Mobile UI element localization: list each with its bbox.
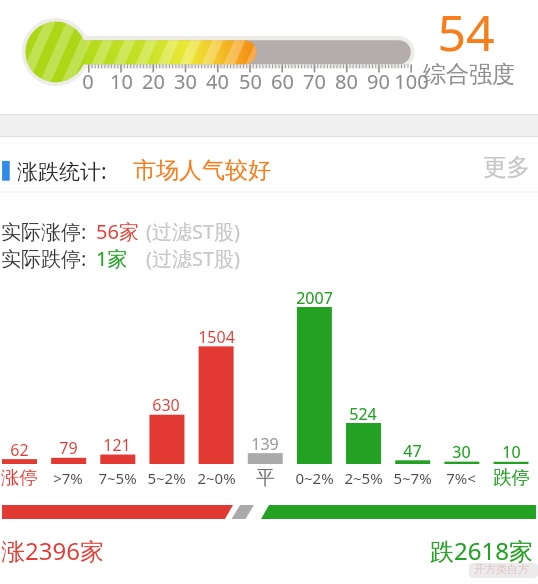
staticText: 2~5% xyxy=(344,468,383,488)
staticText: 10 xyxy=(502,441,521,463)
staticText: 平 xyxy=(256,466,275,489)
staticText: 20 xyxy=(142,68,165,95)
staticText: 630 xyxy=(152,394,180,416)
staticText: (过滤ST股) xyxy=(146,245,241,272)
staticText: 70 xyxy=(303,68,326,95)
staticText: 10 xyxy=(110,68,133,95)
staticText: 更多 xyxy=(483,152,530,182)
staticText: 100 xyxy=(394,68,429,95)
staticText: 7~5% xyxy=(98,468,137,488)
staticText: 5~7% xyxy=(393,468,432,488)
staticText: 1家 xyxy=(96,245,128,272)
staticText: 市场人气较好 xyxy=(133,156,271,185)
staticText: 524 xyxy=(349,403,377,425)
staticText: 30 xyxy=(174,68,197,95)
staticText: 涨2396家 xyxy=(1,534,104,567)
staticText: 80 xyxy=(335,68,358,95)
staticText: 139 xyxy=(251,433,279,455)
staticText: 62 xyxy=(10,439,29,461)
button[interactable]: 更多 xyxy=(479,152,526,182)
staticText: 综合强度 xyxy=(423,60,515,89)
staticText: 实际跌停: xyxy=(1,245,87,272)
staticText: 0~2% xyxy=(295,468,334,488)
staticText: 开方类自方 xyxy=(474,562,529,576)
staticText: 54 xyxy=(437,0,495,66)
staticText: 56家 xyxy=(96,218,139,245)
staticText: 涨停 xyxy=(1,466,38,489)
staticText: 90 xyxy=(367,68,390,95)
staticText: >7% xyxy=(53,468,83,488)
staticText: 涨跌统计: xyxy=(17,157,107,186)
staticText: (过滤ST股) xyxy=(146,218,241,245)
staticText: 0 xyxy=(82,68,94,95)
staticText: 实际涨停: xyxy=(1,218,87,245)
staticText: 47 xyxy=(403,440,422,462)
staticText: 60 xyxy=(271,68,294,95)
staticText: 50 xyxy=(239,68,262,95)
staticText: 2~0% xyxy=(197,468,236,488)
staticText: 40 xyxy=(206,68,229,95)
staticText: 7%< xyxy=(446,468,476,488)
staticText: 跌2618家 xyxy=(430,534,533,567)
staticText: 121 xyxy=(103,434,131,456)
staticText: 1504 xyxy=(198,326,235,348)
staticText: 5~2% xyxy=(147,468,186,488)
staticText: 79 xyxy=(59,437,78,459)
staticText: 30 xyxy=(452,441,471,463)
staticText: 2007 xyxy=(296,287,333,309)
staticText: 跌停 xyxy=(493,466,530,489)
